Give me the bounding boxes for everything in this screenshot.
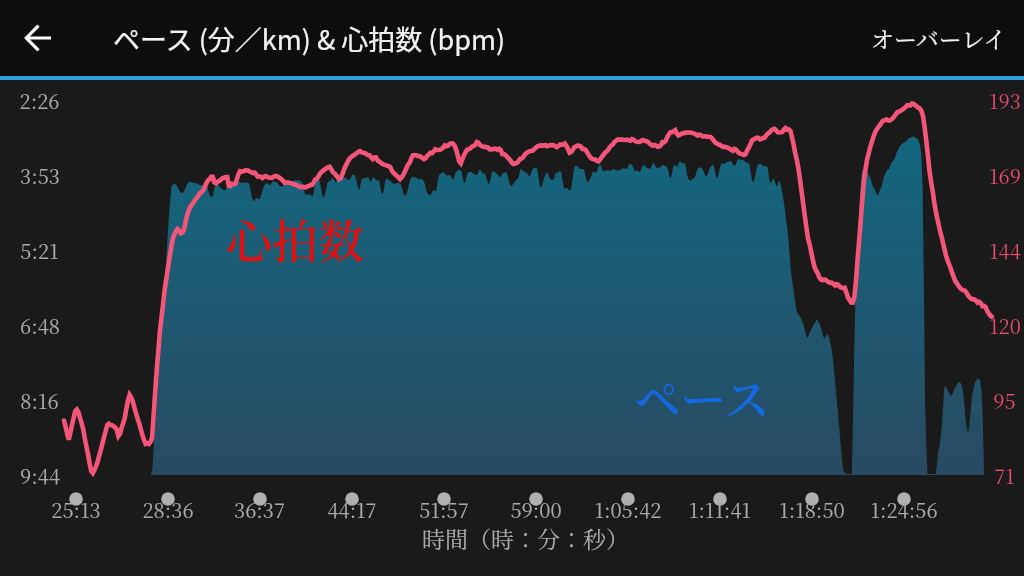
staticText: 8:16	[20, 386, 59, 415]
staticText: ペース (分／km) & 心拍数 (bpm)	[113, 19, 506, 58]
staticText: 59:00	[510, 495, 562, 524]
staticText: 心拍数	[226, 205, 364, 271]
staticText: 2:26	[19, 86, 60, 115]
staticText: 144	[989, 236, 1021, 265]
staticText: 25:13	[51, 495, 101, 524]
staticText: 120	[989, 311, 1021, 340]
staticText: 時間（時：分：秒）	[422, 522, 629, 555]
staticText: 5:21	[20, 236, 59, 265]
staticText: 169	[989, 161, 1021, 190]
staticText: 193	[989, 86, 1021, 115]
staticText: オーバーレイ	[871, 22, 1007, 55]
staticText: 36:37	[234, 495, 285, 524]
staticText: 1:11:41	[689, 495, 751, 524]
staticText: 71	[994, 461, 1015, 490]
staticText: 95	[993, 386, 1016, 415]
staticText: 1:18:50	[779, 495, 845, 524]
staticText: ペース	[634, 363, 770, 429]
button[interactable]: オーバーレイ	[853, 8, 1024, 69]
staticText: 1:24:56	[870, 495, 938, 524]
staticText: 3:53	[20, 161, 60, 190]
staticText: 6:48	[20, 311, 60, 340]
staticText: 44:17	[327, 495, 377, 524]
staticText: 28:36	[142, 495, 194, 524]
staticText: 51:57	[419, 495, 469, 524]
button[interactable]: Back	[0, 0, 76, 76]
staticText: 1:05:42	[594, 495, 662, 524]
staticText: 9:44	[20, 461, 60, 490]
